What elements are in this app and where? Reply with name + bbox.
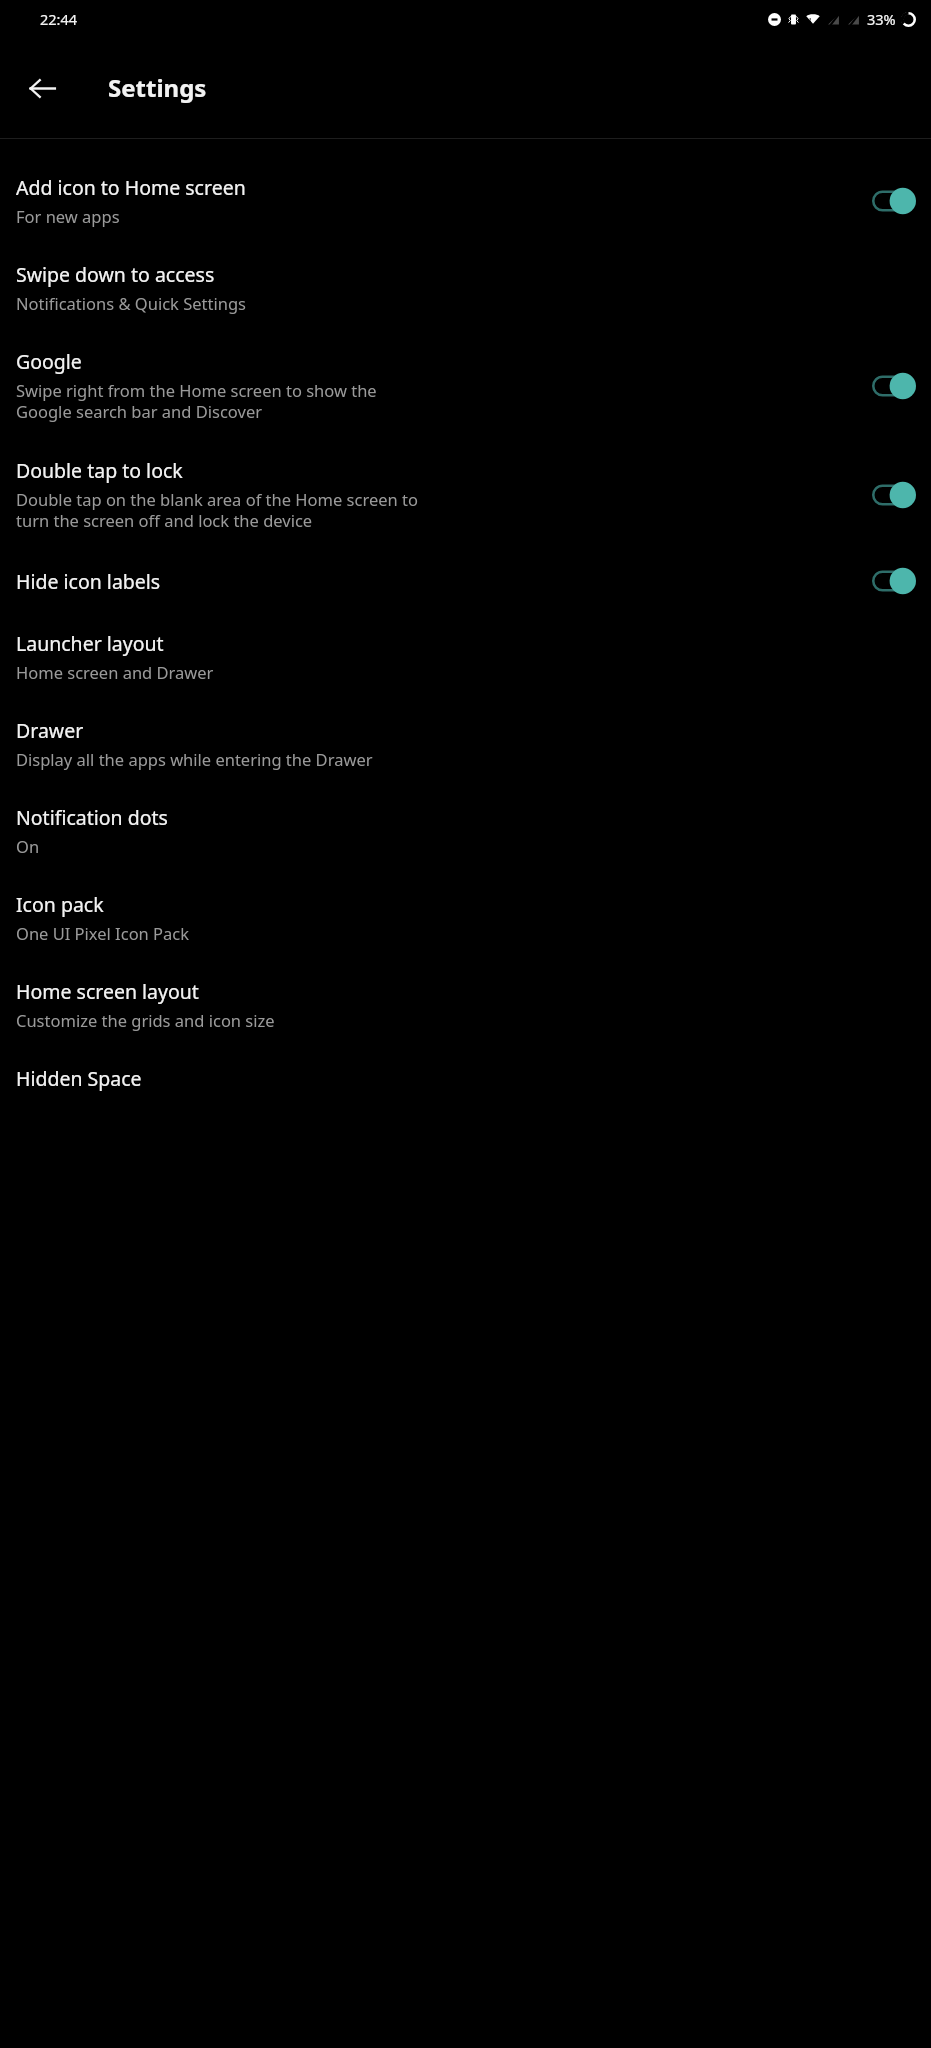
- staticText: Swipe down to access: [16, 261, 215, 288]
- staticText: Double tap to lock: [16, 457, 183, 484]
- staticText: Icon pack: [16, 891, 104, 918]
- button[interactable]: Notification dots: [0, 787, 931, 874]
- staticText: Notification dots: [16, 804, 168, 831]
- staticText: Settings: [108, 71, 207, 104]
- button[interactable]: Hide icon labels: [0, 549, 931, 613]
- staticText: Launcher layout: [16, 630, 164, 657]
- staticText: Add icon to Home screen: [16, 174, 246, 201]
- staticText: For new apps: [16, 205, 120, 227]
- staticText: Hidden Space: [16, 1065, 142, 1092]
- button[interactable]: Swipe down to access: [0, 244, 931, 331]
- staticText: On: [16, 835, 40, 857]
- button[interactable]: Icon pack: [0, 874, 931, 961]
- button[interactable]: Double tap to lock: [0, 440, 931, 549]
- staticText: Hide icon labels: [16, 568, 161, 595]
- staticText: Home screen and Drawer: [16, 661, 214, 683]
- staticText: Home screen layout: [16, 978, 199, 1005]
- staticText: Notifications & Quick Settings: [16, 292, 246, 314]
- staticText: Google: [16, 348, 82, 375]
- button[interactable]: Drawer: [0, 700, 931, 787]
- button[interactable]: Toggle: [872, 566, 916, 596]
- button[interactable]: Add icon to Home screen: [0, 157, 931, 244]
- staticText: 33%: [867, 9, 896, 29]
- button[interactable]: Home screen layout: [0, 961, 931, 1048]
- button[interactable]: Launcher layout: [0, 613, 931, 700]
- staticText: One UI Pixel Icon Pack: [16, 922, 190, 944]
- button[interactable]: Google: [0, 331, 931, 440]
- staticText: Swipe right from the Home screen to show…: [16, 379, 377, 423]
- staticText: 22:44: [40, 9, 78, 29]
- button[interactable]: Toggle: [872, 371, 916, 401]
- button[interactable]: Toggle: [872, 186, 916, 216]
- staticText: Double tap on the blank area of the Home…: [16, 488, 418, 532]
- button[interactable]: Hidden Space: [0, 1048, 931, 1109]
- staticText: Drawer: [16, 717, 84, 744]
- staticText: Customize the grids and icon size: [16, 1009, 275, 1031]
- staticText: Display all the apps while entering the …: [16, 748, 373, 770]
- button[interactable]: Toggle: [872, 480, 916, 510]
- button[interactable]: Back: [15, 61, 69, 115]
